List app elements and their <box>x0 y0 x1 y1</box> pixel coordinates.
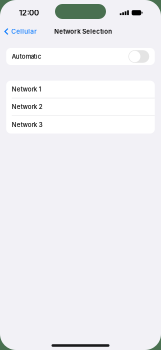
staticText: Network 1 <box>12 85 42 93</box>
staticText: Cellular <box>11 28 36 35</box>
staticText: Network 2 <box>12 103 43 110</box>
staticText: Network 3 <box>12 121 43 128</box>
staticText: Automatic <box>12 53 42 60</box>
staticText: 12:00 <box>19 8 39 17</box>
button[interactable]: Automatic <box>6 48 155 65</box>
button[interactable]: Network 1 <box>6 81 155 98</box>
button[interactable]: Network 2 <box>6 98 155 116</box>
button[interactable]: Cellular <box>0 25 36 38</box>
staticText: Network Selection <box>54 28 112 35</box>
button[interactable]: Network 3 <box>6 116 155 133</box>
